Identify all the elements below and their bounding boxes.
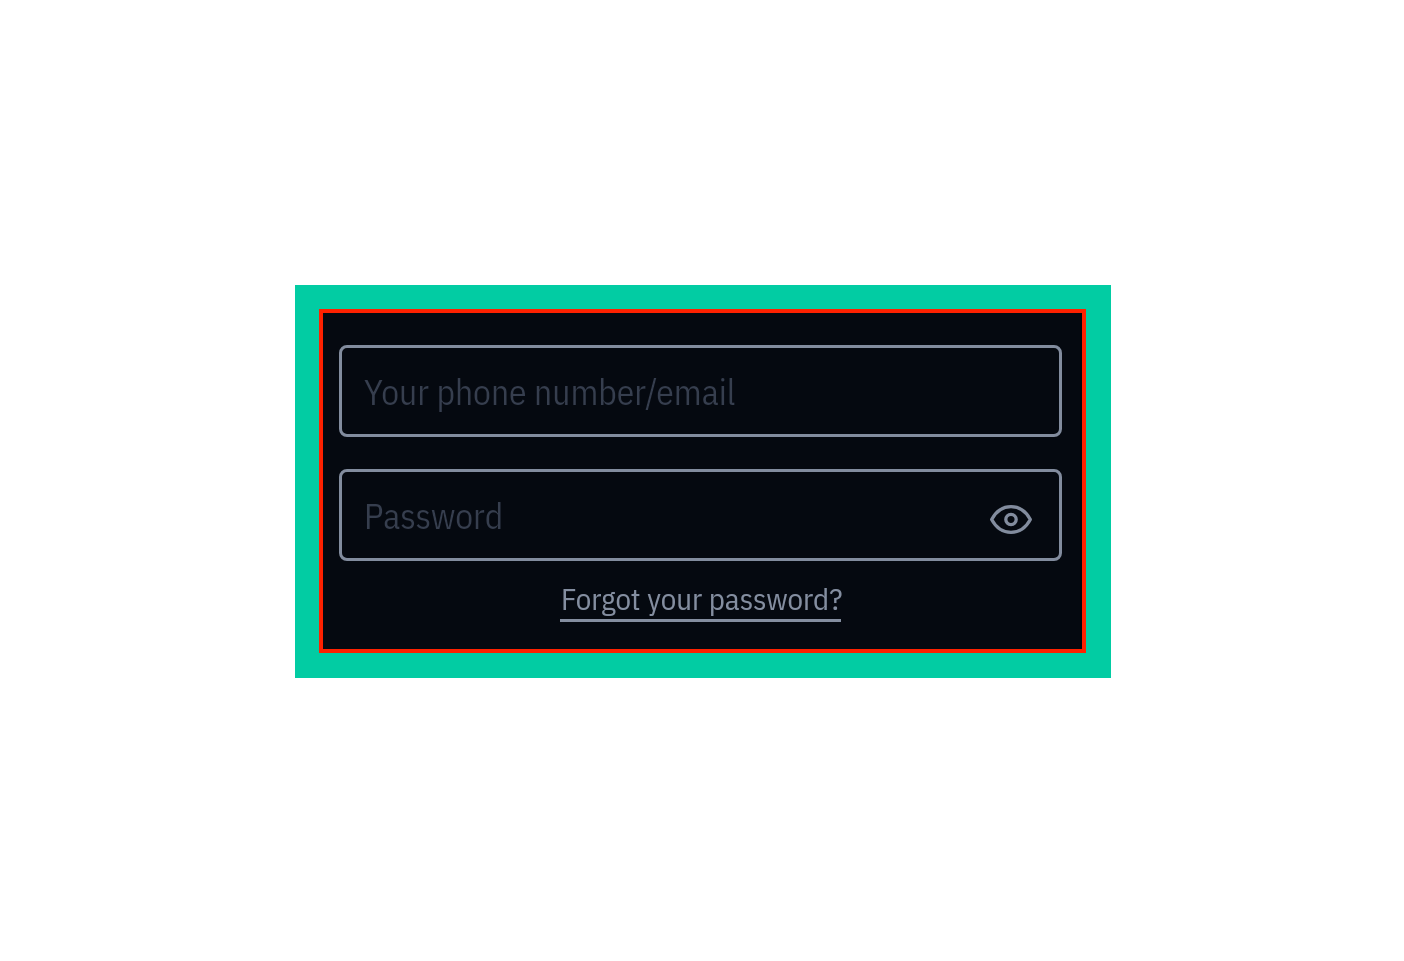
button[interactable]: Forgot your password? [561, 578, 845, 626]
button[interactable]: Your phone number/email [339, 345, 1062, 437]
staticText: Your phone number/email [364, 369, 736, 415]
staticText: Forgot your password? [561, 578, 843, 618]
staticText: Password [364, 493, 504, 539]
button[interactable]: Show password [986, 494, 1036, 544]
button[interactable]: Password [339, 469, 1062, 561]
